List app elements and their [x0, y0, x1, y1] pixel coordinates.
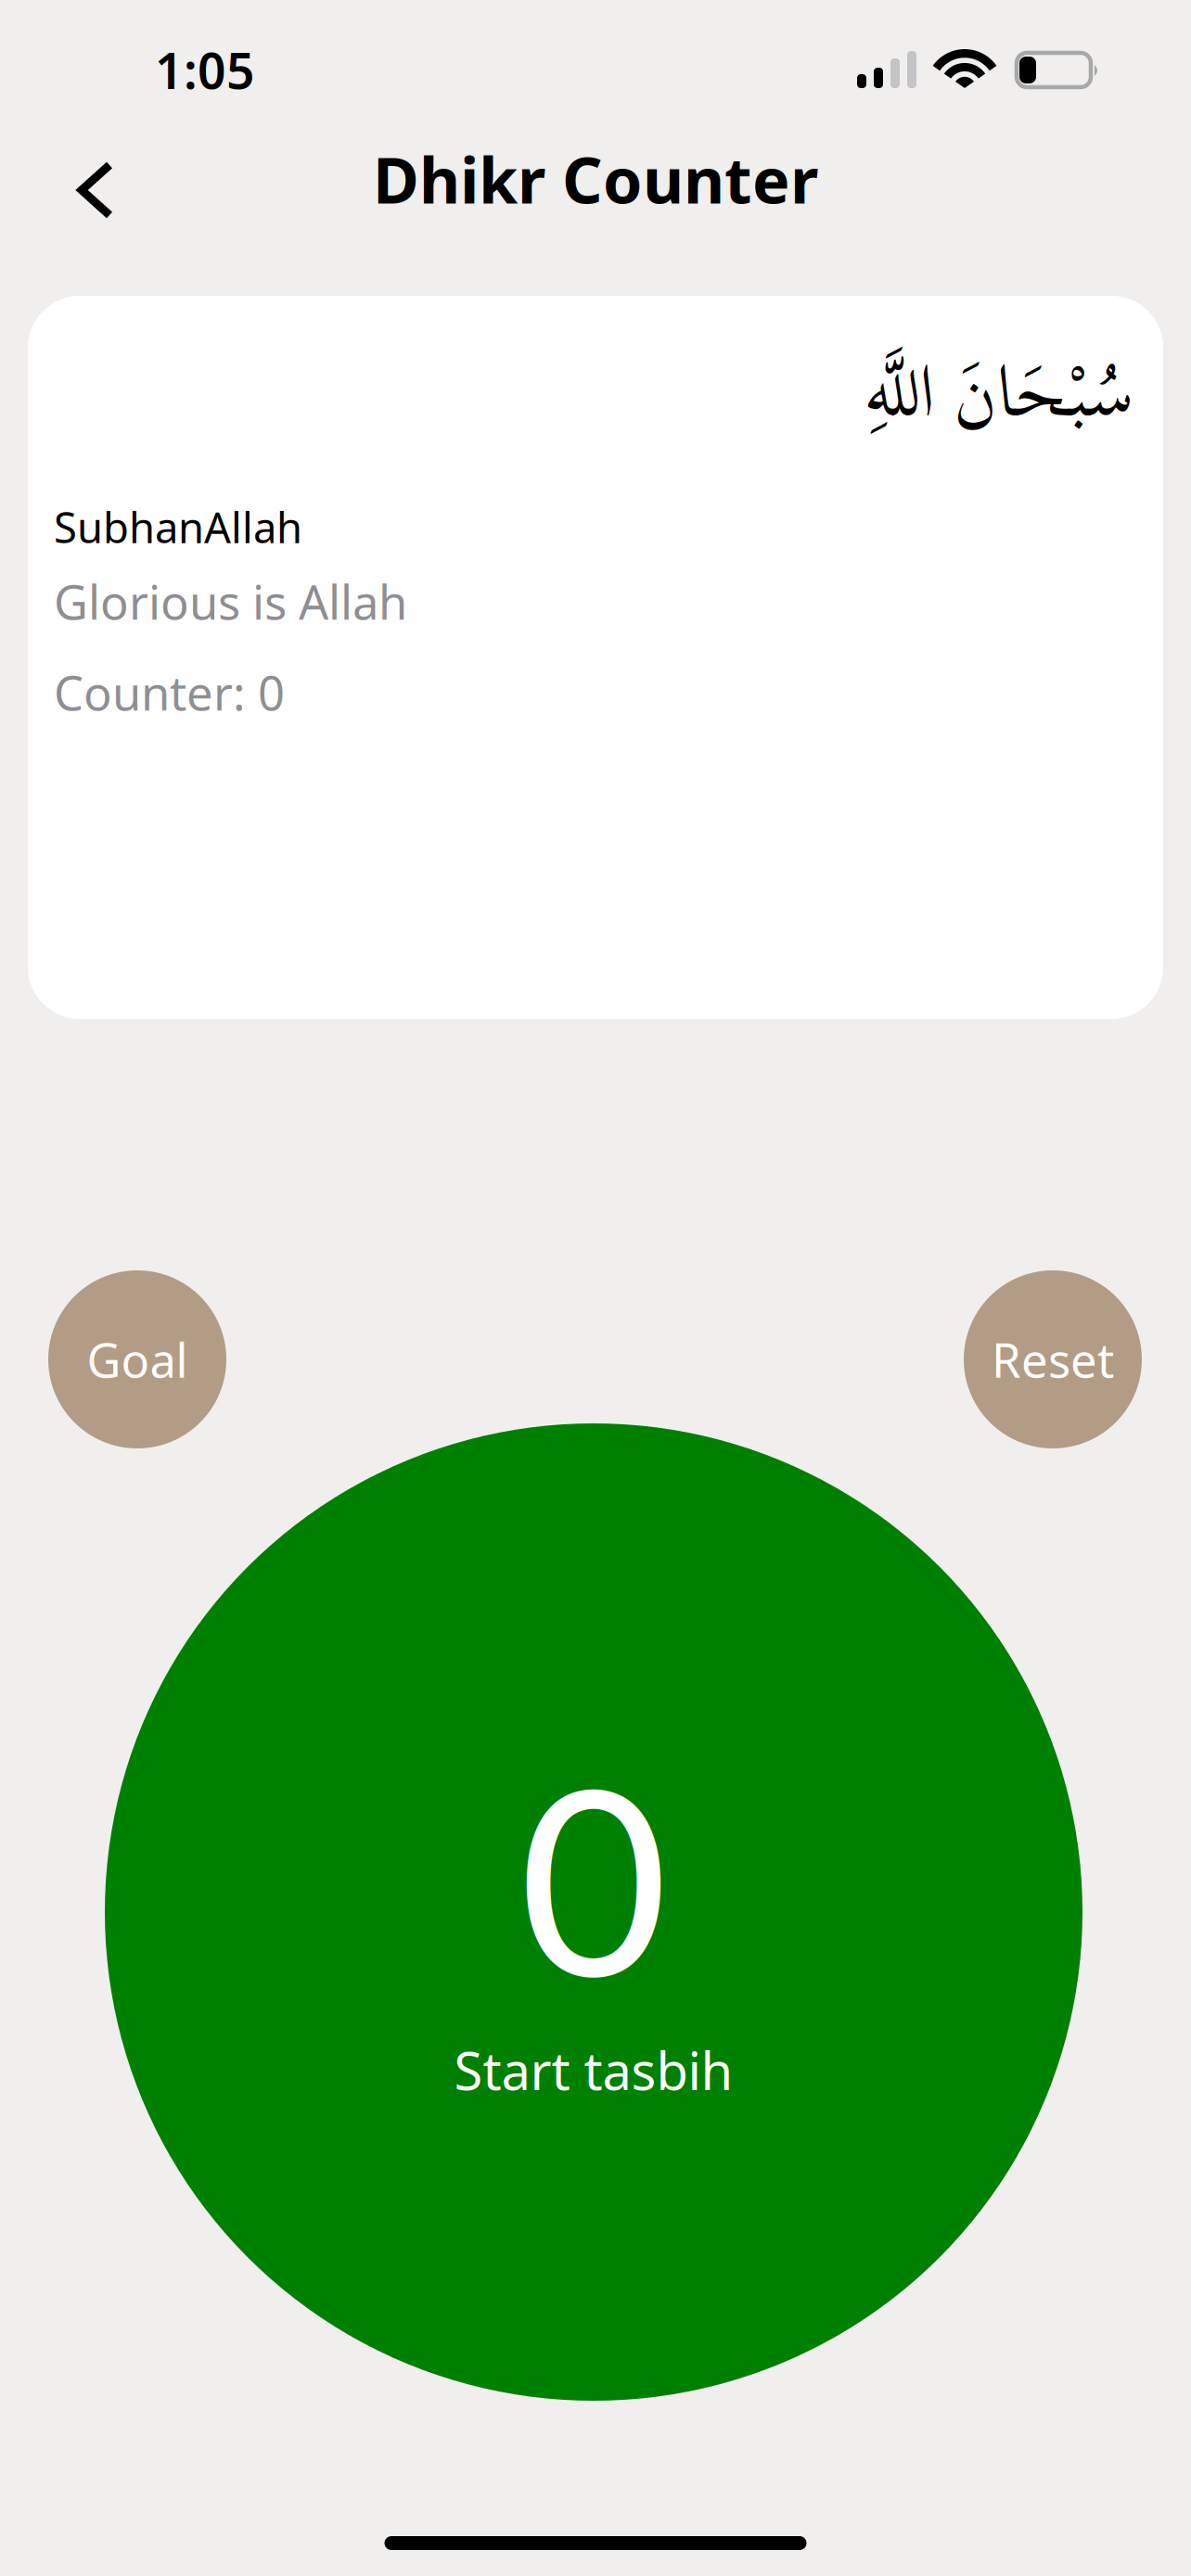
button[interactable]: 0 [105, 1423, 1082, 2401]
button[interactable]: Reset [964, 1270, 1142, 1448]
staticText: سُبْحَانَ اللَّهِ [864, 317, 1134, 466]
staticText: 0 [519, 1722, 668, 2031]
staticText: Counter: 0 [54, 661, 285, 724]
staticText: Reset [992, 1328, 1114, 1391]
button[interactable]: سُبْحَانَ اللَّهِ [28, 296, 1163, 1019]
staticText: SubhanAllah [54, 499, 302, 555]
staticText: Glorious is Allah [54, 570, 407, 633]
button[interactable]: Goal [48, 1270, 226, 1448]
staticText: 1:05 [155, 37, 255, 103]
staticText: Start tasbih [454, 2035, 733, 2104]
staticText: Goal [87, 1328, 188, 1391]
staticText: Dhikr Counter [373, 137, 818, 221]
button[interactable] [82, 165, 109, 215]
